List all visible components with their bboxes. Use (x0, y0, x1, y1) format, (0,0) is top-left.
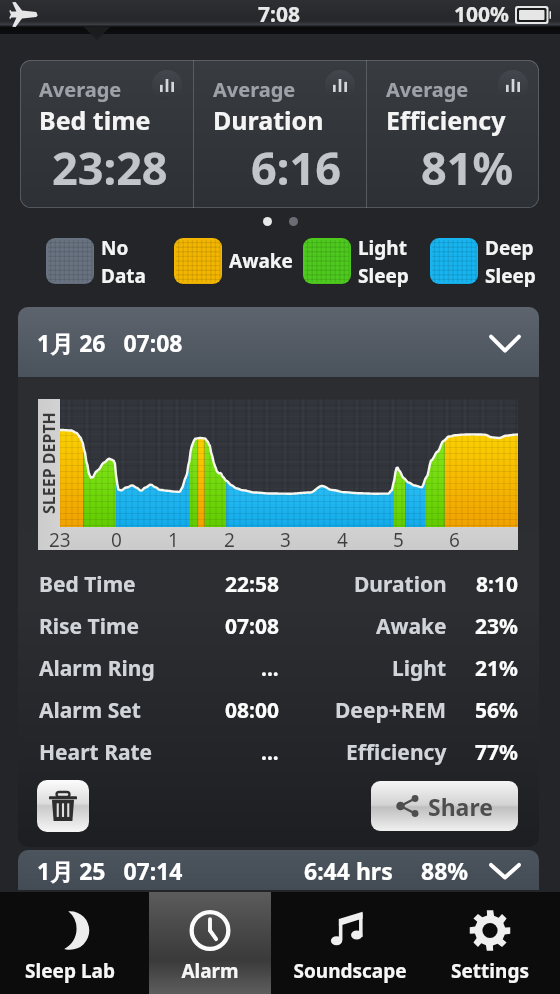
staticText: Sleep (485, 263, 536, 287)
staticText: 3 (280, 527, 291, 550)
staticText: 1 (168, 527, 179, 550)
staticText: 2 (224, 527, 235, 550)
staticText: Awake (376, 612, 447, 641)
button[interactable]: Average (20, 60, 193, 208)
staticText: 8:10 (476, 570, 518, 599)
staticText: 6:44 hrs (304, 855, 393, 886)
button[interactable]: Show chart (325, 70, 355, 100)
staticText: 88% (421, 855, 469, 886)
staticText: 6 (449, 527, 460, 550)
staticText: Settings (451, 958, 529, 984)
staticText: 56% (475, 696, 518, 725)
staticText: Bed time (39, 103, 151, 137)
staticText: Data (101, 263, 146, 287)
staticText: Sleep (358, 263, 409, 287)
staticText: 6:16 (251, 137, 341, 198)
button[interactable]: Sleep Lab (0, 892, 140, 994)
staticText: Average (39, 76, 122, 103)
staticText: Awake (229, 248, 293, 274)
staticText: Alarm Set (39, 696, 141, 725)
button[interactable]: Alarm (140, 892, 280, 994)
staticText: 0 (111, 527, 122, 550)
staticText: ... (261, 654, 279, 683)
button[interactable]: Share (371, 781, 518, 831)
staticText: 21% (475, 654, 518, 683)
staticText: No (101, 235, 129, 261)
staticText: Light (358, 235, 407, 261)
staticText: 1月 25 07:14 (37, 855, 183, 886)
button[interactable]: Show chart (152, 70, 182, 100)
staticText: 1月 26 07:08 (37, 327, 183, 358)
button[interactable]: 1月 25 07:14 (18, 850, 539, 890)
button[interactable]: Settings (420, 892, 560, 994)
staticText: 23 (49, 527, 71, 550)
staticText: Sleep Lab (25, 958, 115, 984)
staticText: 81% (421, 137, 514, 198)
staticText: Rise Time (39, 612, 140, 641)
staticText: 4 (337, 527, 348, 550)
staticText: Efficiency (386, 103, 506, 137)
staticText: Duration (354, 570, 447, 599)
staticText: 5 (393, 527, 404, 550)
staticText: 77% (475, 738, 518, 767)
staticText: Average (386, 76, 469, 103)
staticText: Average (213, 76, 296, 103)
staticText: Soundscape (293, 958, 407, 984)
staticText: Alarm Ring (39, 654, 155, 683)
staticText: 08:00 (225, 696, 279, 725)
button[interactable]: Delete (37, 780, 89, 832)
staticText: Bed Time (39, 570, 136, 599)
button[interactable]: 1月 26 07:08 (18, 307, 539, 377)
staticText: Heart Rate (39, 738, 153, 767)
staticText: 22:58 (225, 570, 279, 599)
staticText: SLEEP DEPTH (38, 412, 60, 514)
staticText: 23:28 (52, 137, 168, 198)
button[interactable]: Average (194, 60, 366, 208)
staticText: 07:08 (225, 612, 279, 641)
staticText: 100% (454, 0, 509, 29)
staticText: Deep (485, 235, 534, 261)
staticText: 23% (475, 612, 518, 641)
staticText: ... (261, 738, 279, 767)
staticText: Alarm (181, 958, 239, 984)
button[interactable]: Soundscape (280, 892, 420, 994)
staticText: Efficiency (346, 738, 447, 767)
staticText: Duration (213, 103, 324, 137)
button[interactable]: Show chart (498, 70, 528, 100)
staticText: Light (392, 654, 447, 683)
staticText: 7:08 (258, 0, 300, 29)
staticText: Share (428, 791, 493, 822)
button[interactable]: Average (367, 60, 539, 208)
staticText: Deep+REM (335, 696, 447, 725)
